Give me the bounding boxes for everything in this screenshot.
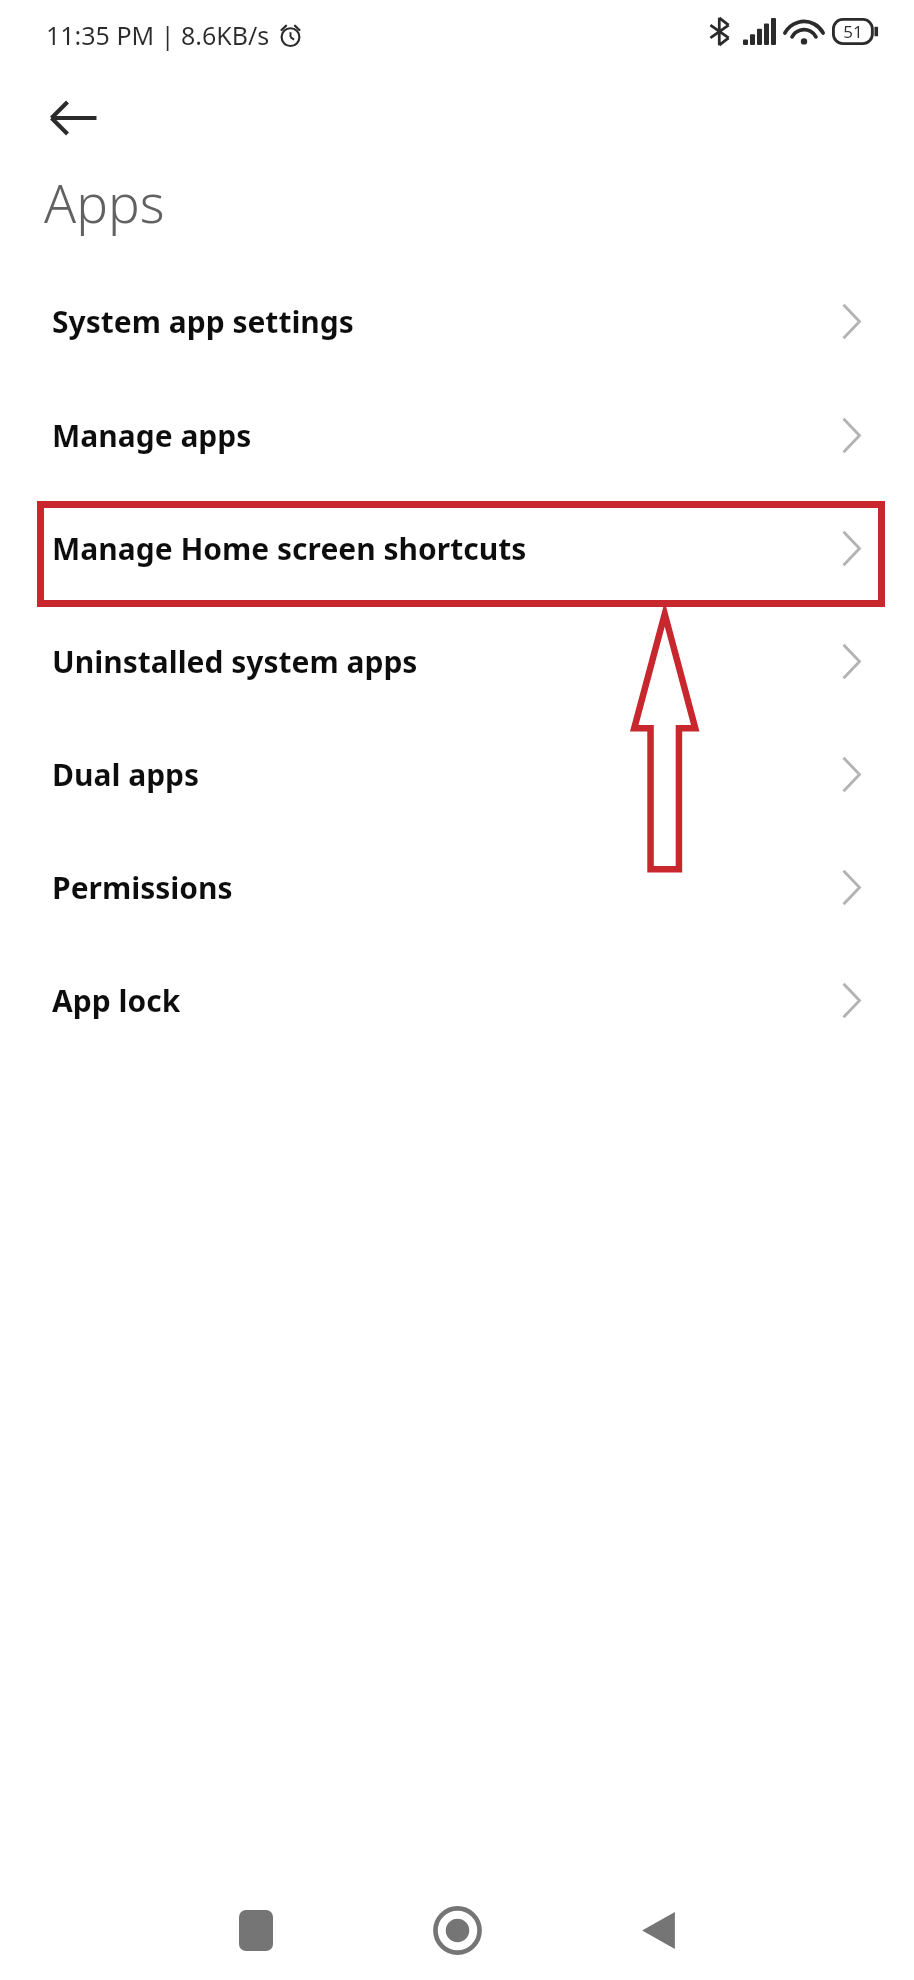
staticText: Manage apps bbox=[52, 415, 252, 456]
button[interactable]: Permissions bbox=[0, 831, 914, 943]
button[interactable]: Dual apps bbox=[0, 718, 914, 830]
staticText: Uninstalled system apps bbox=[52, 641, 418, 682]
button[interactable]: App lock bbox=[0, 944, 914, 1056]
button[interactable]: Home bbox=[415, 1888, 499, 1972]
button[interactable]: Back bbox=[30, 74, 118, 162]
button[interactable]: Uninstalled system apps bbox=[0, 605, 914, 717]
button[interactable]: Manage Home screen shortcuts bbox=[0, 492, 914, 604]
staticText: 51 bbox=[843, 20, 863, 43]
button[interactable]: Back bbox=[616, 1888, 700, 1972]
staticText: App lock bbox=[52, 980, 181, 1021]
staticText: Manage Home screen shortcuts bbox=[52, 528, 527, 569]
button[interactable]: Manage apps bbox=[0, 379, 914, 491]
staticText: System app settings bbox=[52, 301, 354, 342]
staticText: Permissions bbox=[52, 867, 233, 908]
staticText: Apps bbox=[44, 166, 165, 238]
button[interactable]: System app settings bbox=[0, 265, 914, 377]
button[interactable]: Recent apps bbox=[214, 1888, 298, 1972]
staticText: Dual apps bbox=[52, 754, 200, 795]
staticText: 11:35 PM | 8.6KB/s bbox=[46, 18, 270, 52]
